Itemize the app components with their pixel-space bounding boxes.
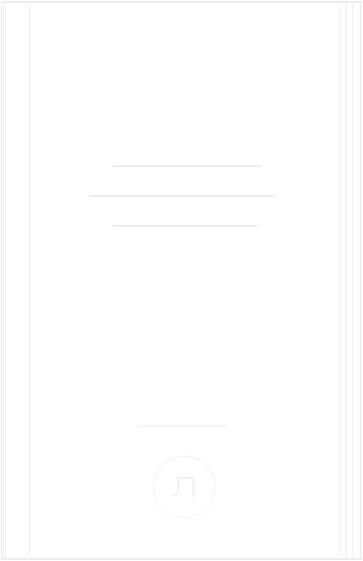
- button[interactable]: Play music: [153, 455, 216, 518]
